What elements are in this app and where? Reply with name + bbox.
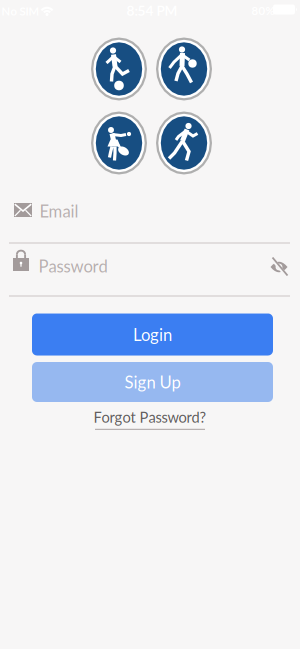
- staticText: 80%: [251, 4, 274, 17]
- button[interactable]: Sign Up: [32, 362, 273, 402]
- staticText: Login: [133, 324, 172, 344]
- button[interactable]: Password: [0, 243, 300, 297]
- button[interactable]: Email: [0, 191, 300, 243]
- staticText: Email: [39, 201, 78, 221]
- button[interactable]: Forgot Password?: [65, 406, 235, 432]
- button[interactable]: Login: [32, 313, 273, 355]
- staticText: Sign Up: [124, 372, 180, 392]
- button[interactable]: Show password: [264, 253, 294, 281]
- staticText: 8:54 PM: [126, 2, 177, 19]
- staticText: Forgot Password?: [93, 408, 206, 426]
- staticText: Password: [38, 256, 107, 276]
